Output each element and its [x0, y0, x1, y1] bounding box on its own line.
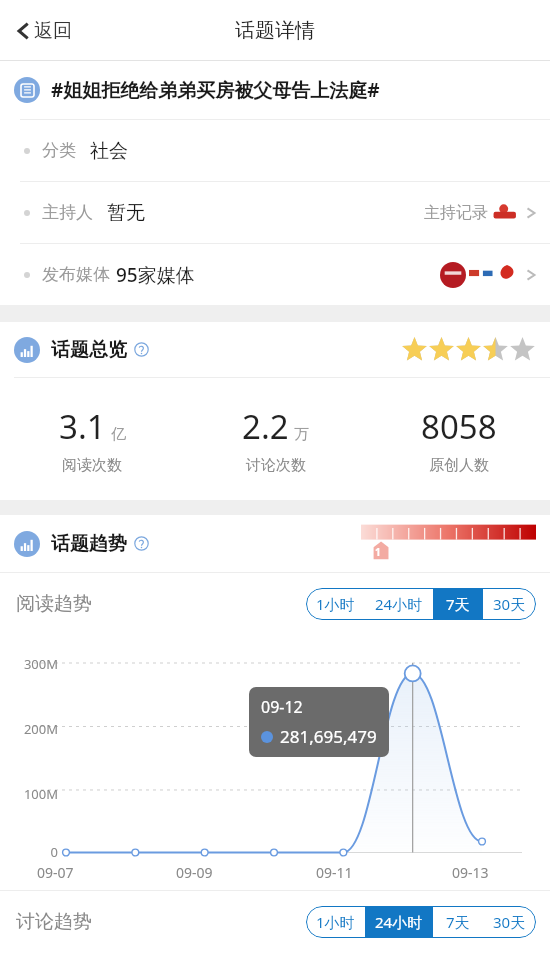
staticText: 24小时 [375, 912, 423, 932]
staticText: 分类 [42, 140, 76, 161]
staticText: 社会 [90, 139, 128, 163]
button[interactable]: 1小时 [306, 906, 365, 938]
staticText: 讨论趋势 [16, 910, 92, 934]
staticText: 1小时 [316, 912, 355, 932]
staticText: 09-07 [37, 863, 74, 882]
staticText: 话题详情 [235, 18, 315, 43]
staticText: 亿 [111, 425, 126, 444]
staticText: 100M [0, 785, 58, 803]
staticText: #姐姐拒绝给弟弟买房被父母告上法庭# [51, 77, 380, 103]
staticText: 7天 [446, 912, 470, 932]
button[interactable]: 1小时 [306, 588, 365, 620]
staticText: 8058 [421, 404, 497, 449]
staticText: 30天 [493, 594, 526, 614]
staticText: 原创人数 [429, 456, 489, 475]
staticText: 09-13 [452, 863, 489, 882]
staticText: 发布媒体 [42, 264, 110, 285]
staticText: 返回 [34, 19, 72, 43]
staticText: 1小时 [316, 594, 355, 614]
button[interactable]: 7天 [433, 906, 483, 938]
staticText: 200M [0, 720, 58, 738]
staticText: 2.2 [242, 404, 289, 449]
staticText: 话题总览 [51, 338, 127, 362]
staticText: 09-12 [261, 696, 303, 718]
staticText: 话题趋势 [51, 532, 127, 556]
button[interactable]: 发布媒体 [0, 244, 550, 305]
staticText: 24小时 [375, 594, 423, 614]
staticText: 阅读次数 [62, 456, 122, 475]
staticText: 7天 [446, 594, 470, 614]
staticText: 阅读趋势 [16, 592, 92, 616]
button[interactable]: 话题总览 [0, 322, 550, 377]
staticText: 3.1 [59, 404, 106, 449]
staticText: 09-09 [176, 863, 213, 882]
button[interactable]: 分类 [0, 120, 550, 181]
staticText: 主持记录 [424, 203, 488, 223]
button[interactable]: 帮助 [134, 536, 149, 551]
button[interactable]: 7天 [433, 588, 483, 620]
button[interactable]: #姐姐拒绝给弟弟买房被父母告上法庭# [0, 61, 550, 119]
button[interactable]: 24小时 [365, 906, 433, 938]
button[interactable]: 帮助 [134, 342, 149, 357]
button[interactable]: 主持人 [0, 182, 550, 243]
staticText: 1 [375, 545, 381, 559]
button[interactable]: 30天 [483, 906, 536, 938]
button[interactable]: 返回 [8, 11, 80, 51]
button[interactable]: 24小时 [365, 588, 433, 620]
staticText: 95家媒体 [116, 262, 195, 288]
staticText: 万 [294, 425, 309, 444]
button[interactable]: 30天 [483, 588, 536, 620]
staticText: 300M [0, 655, 58, 673]
staticText: 281,695,479 [280, 725, 377, 748]
staticText: 主持人 [42, 202, 93, 223]
staticText: 讨论次数 [246, 456, 306, 475]
staticText: 30天 [493, 912, 526, 932]
staticText: 09-11 [316, 863, 353, 882]
staticText: 暂无 [107, 201, 145, 225]
button[interactable]: 话题趋势 [0, 515, 550, 572]
staticText: 0 [0, 843, 58, 861]
